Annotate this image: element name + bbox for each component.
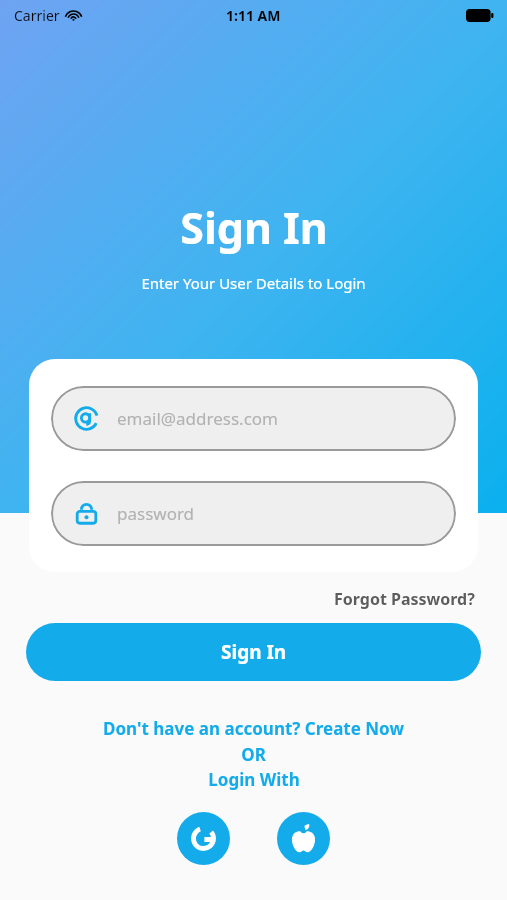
staticText: OR	[241, 743, 266, 766]
button[interactable]: Sign in with Google	[177, 812, 230, 865]
staticText: 1:11 AM	[226, 6, 281, 25]
button[interactable]: Don't have an account? Create Now	[99, 716, 408, 741]
button[interactable]: Sign In	[26, 623, 481, 681]
staticText: Don't have an account? Create Now	[103, 717, 404, 740]
staticText: email@address.com	[117, 407, 278, 430]
staticText: Carrier	[14, 6, 60, 25]
button[interactable]: Forgot Password?	[331, 586, 478, 612]
button[interactable]: password	[51, 481, 456, 546]
staticText: password	[117, 502, 195, 525]
button[interactable]: Sign in with Apple	[277, 812, 330, 865]
staticText: Sign In	[221, 639, 287, 665]
staticText: Enter Your User Details to Login	[141, 273, 366, 293]
button[interactable]: email@address.com	[51, 386, 456, 451]
staticText: Forgot Password?	[334, 588, 475, 610]
staticText: Login With	[208, 768, 300, 791]
staticText: Sign In	[180, 198, 328, 257]
